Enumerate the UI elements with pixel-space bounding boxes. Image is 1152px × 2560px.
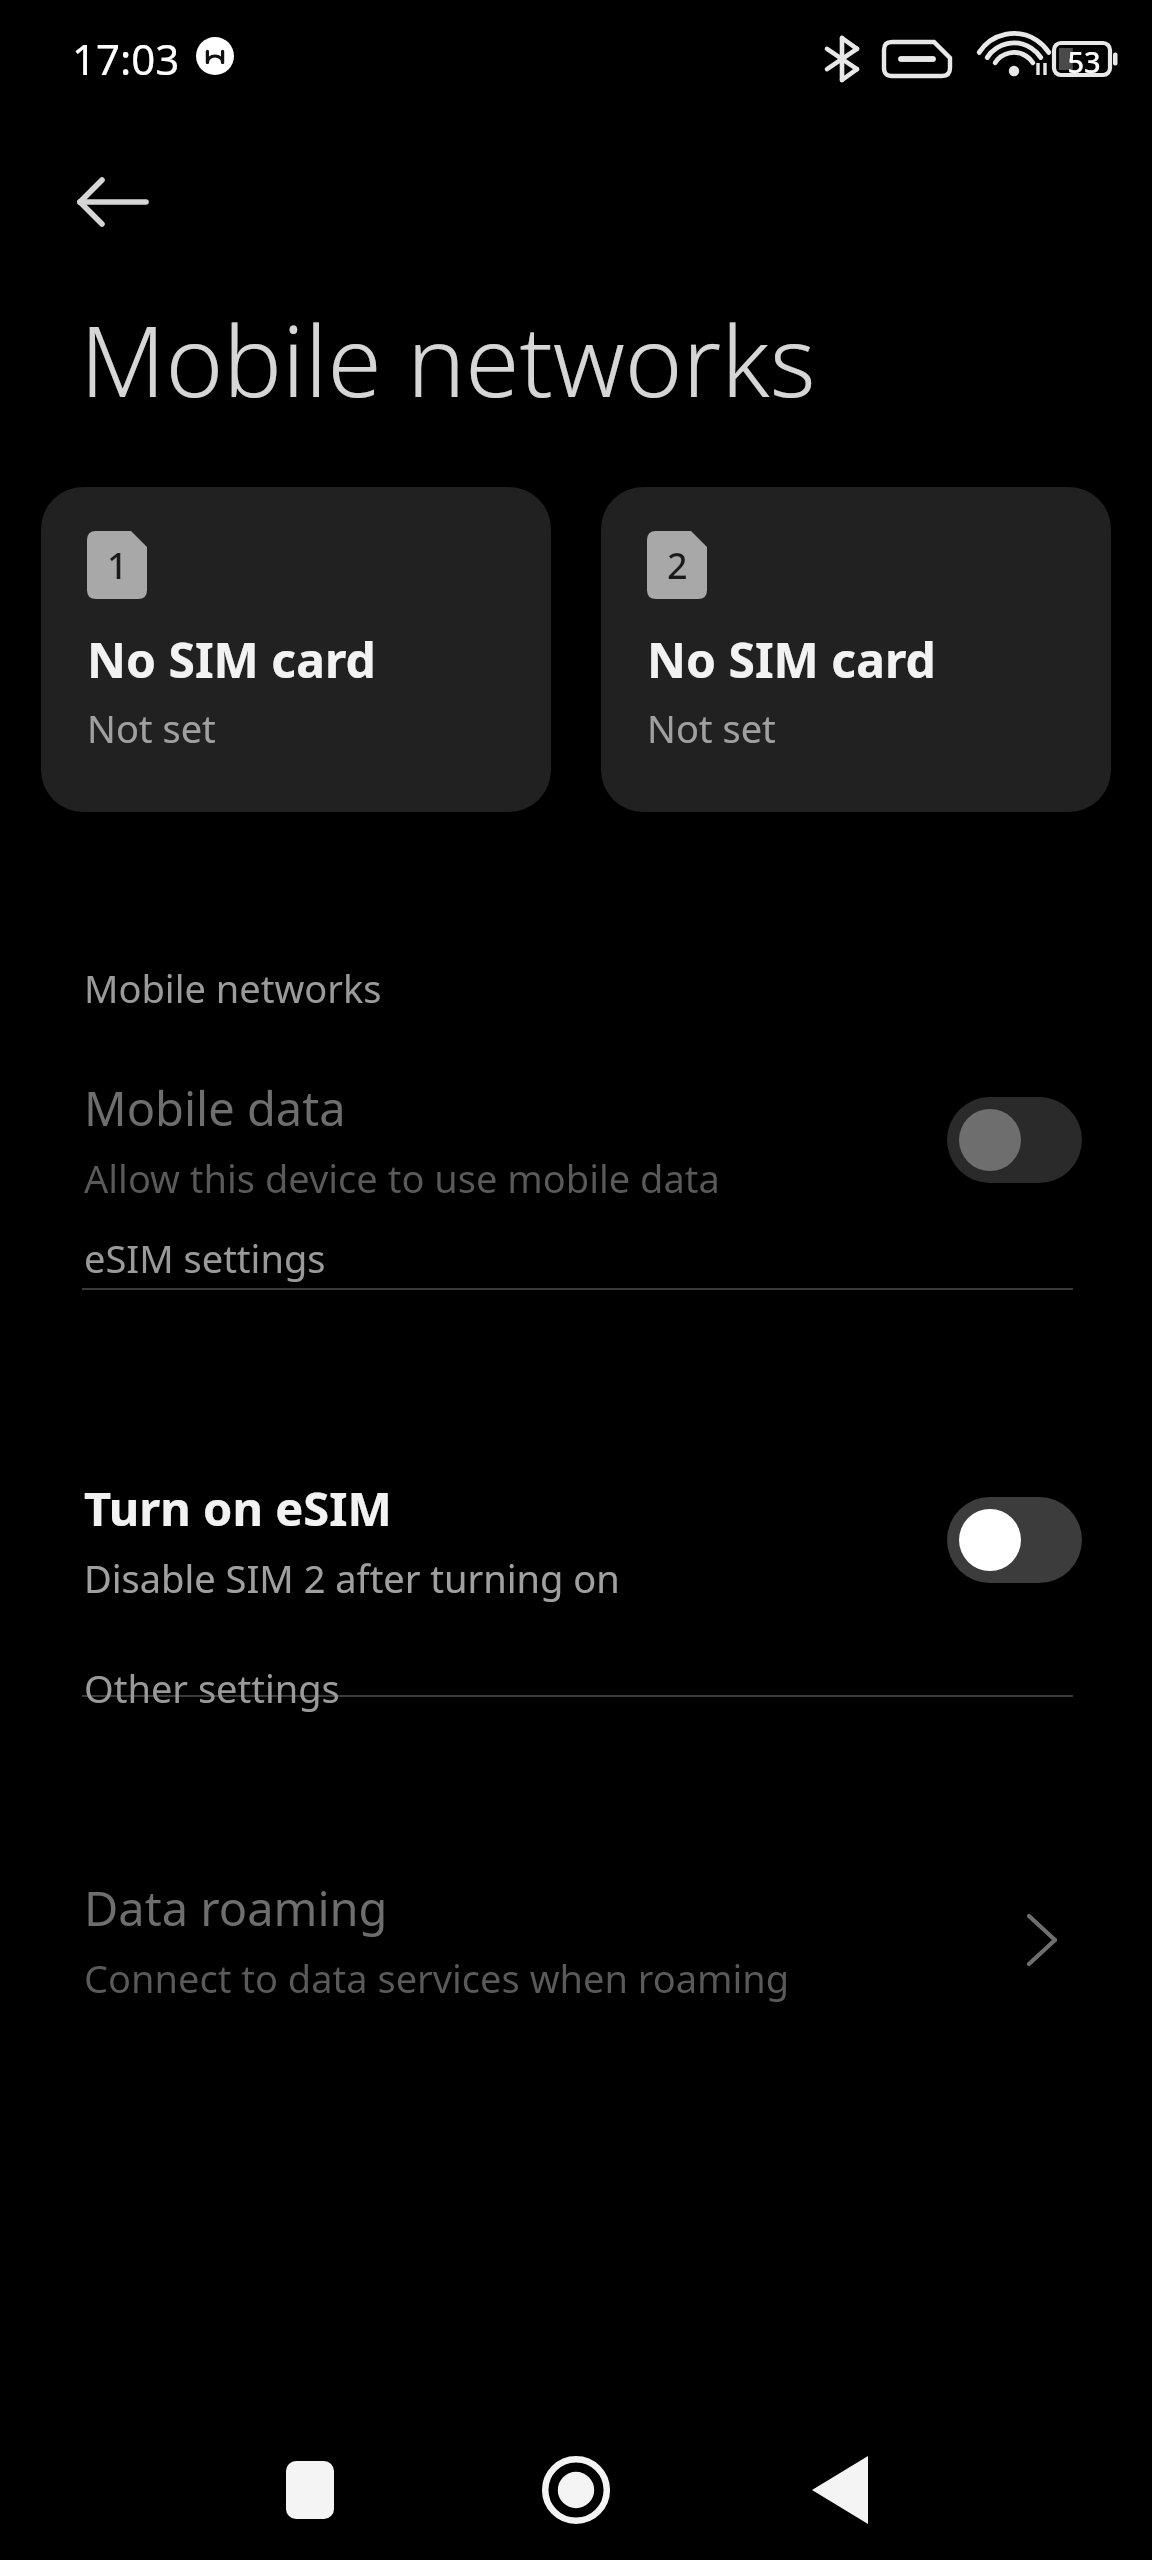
button[interactable]: Recents (262, 2442, 358, 2538)
button[interactable]: Toggle off (947, 1497, 1082, 1583)
staticText: Other settings (84, 1662, 340, 1714)
staticText: eSIM settings (84, 1232, 326, 1284)
staticText: Data roaming (84, 1876, 388, 1940)
staticText: 53 (1067, 42, 1101, 81)
staticText: Mobile networks (80, 292, 816, 425)
button[interactable]: Data roaming (0, 1860, 1152, 2020)
button[interactable]: Toggle off (947, 1097, 1082, 1183)
button[interactable]: 1 (41, 487, 551, 812)
staticText: Mobile data (84, 1076, 346, 1140)
staticText: 1 (107, 541, 128, 590)
button[interactable]: Turn on eSIM (0, 1460, 1152, 1620)
staticText: Turn on eSIM (84, 1476, 392, 1540)
button[interactable]: Back (792, 2442, 888, 2538)
staticText: 17:03 (72, 30, 180, 87)
staticText: Disable SIM 2 after turning on (84, 1552, 620, 1604)
staticText: Not set (87, 702, 216, 754)
staticText: Mobile networks (84, 962, 382, 1014)
staticText: Not set (647, 702, 776, 754)
staticText: No SIM card (647, 627, 936, 692)
button[interactable]: Open Data roaming (1002, 1890, 1082, 1990)
button[interactable]: Home (528, 2442, 624, 2538)
button[interactable]: 2 (601, 487, 1111, 812)
staticText: Allow this device to use mobile data (84, 1152, 720, 1204)
staticText: No SIM card (87, 627, 376, 692)
button[interactable]: Back (50, 152, 174, 252)
staticText: 2 (667, 541, 688, 590)
staticText: Connect to data services when roaming (84, 1952, 790, 2004)
button[interactable]: Mobile data (0, 1060, 1152, 1220)
